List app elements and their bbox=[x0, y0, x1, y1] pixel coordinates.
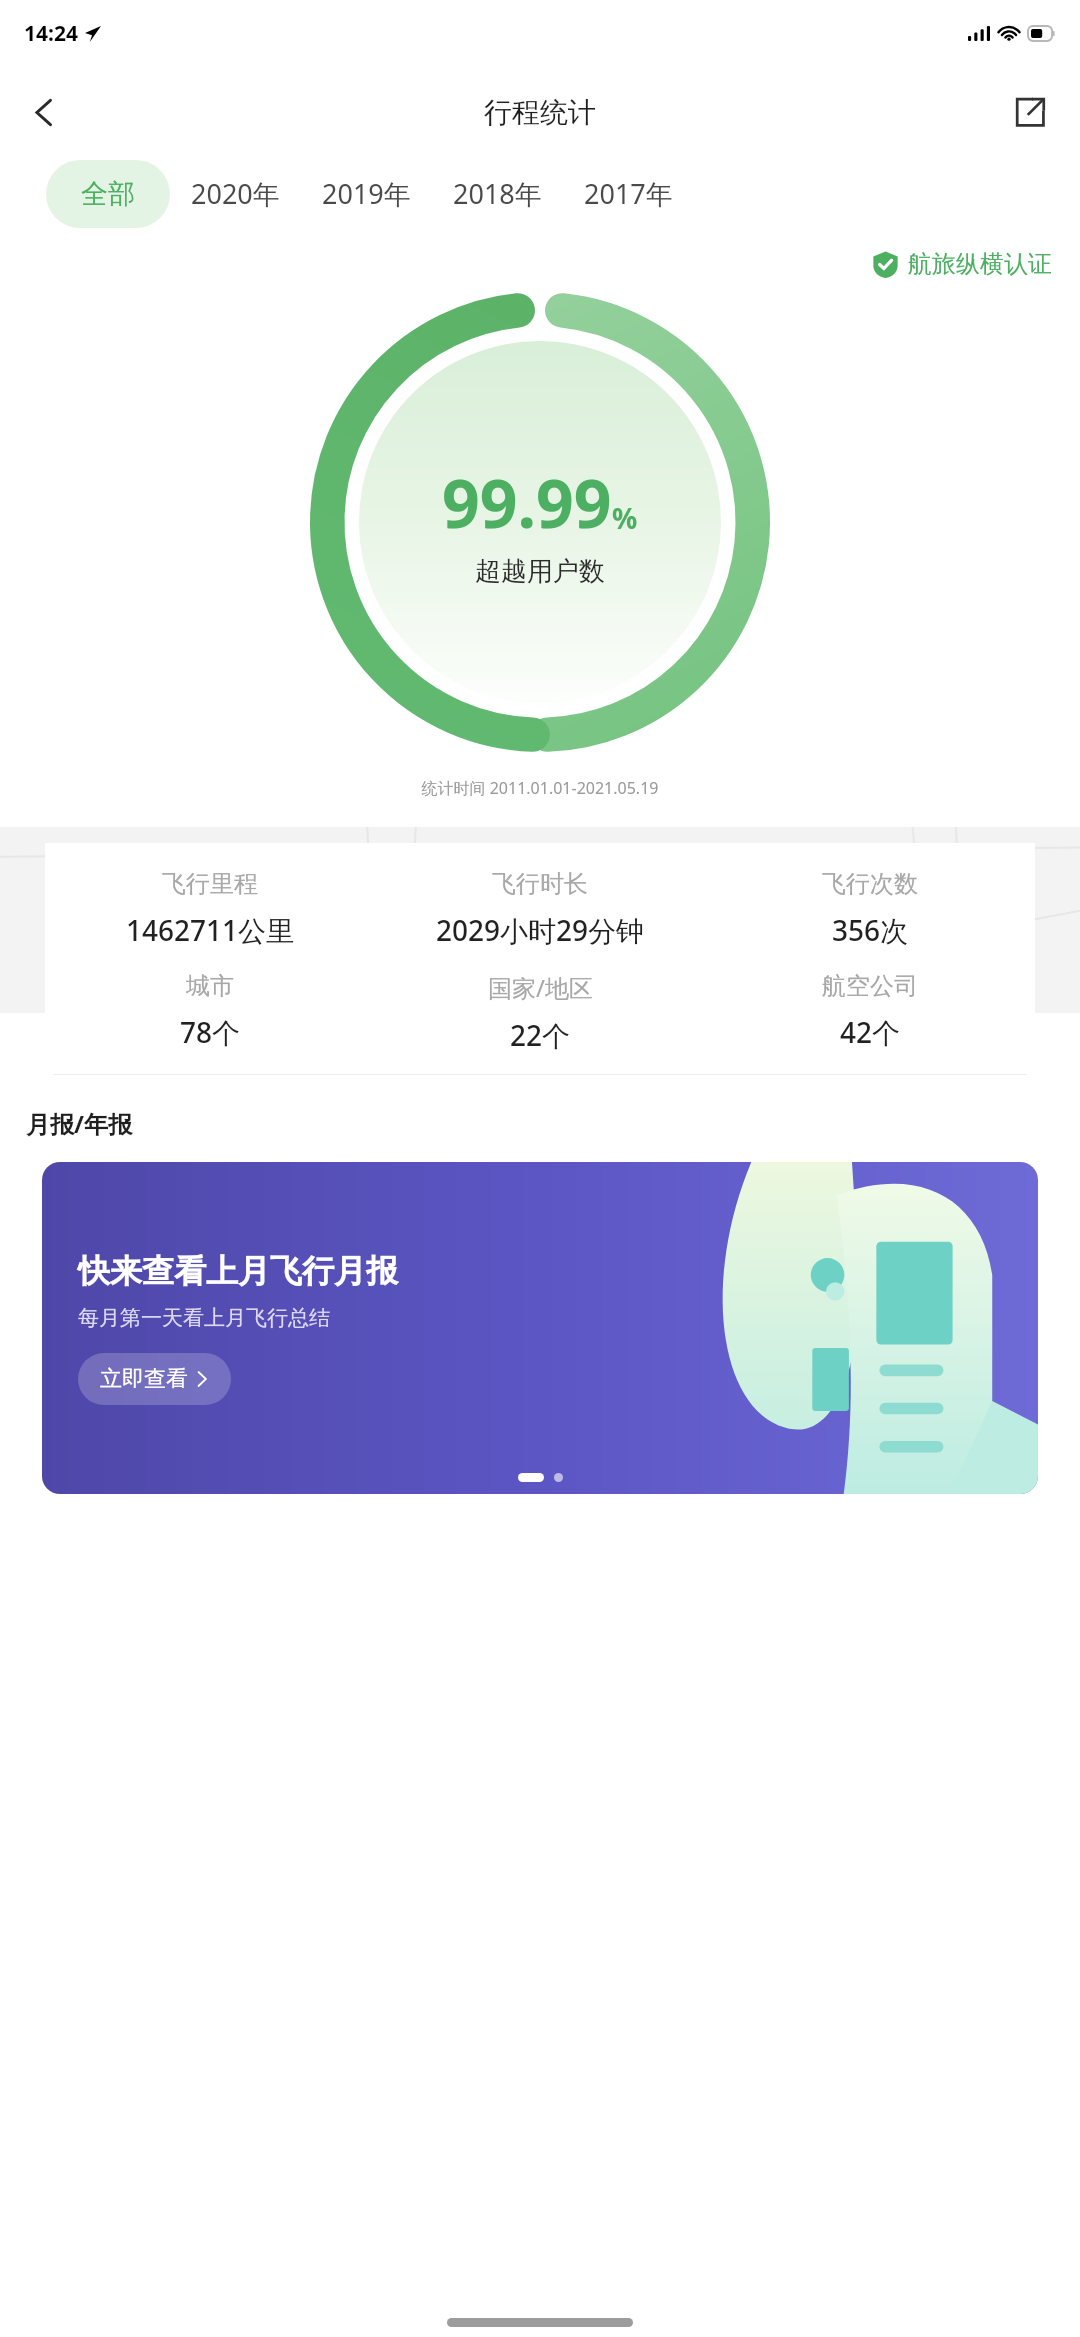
staticText: 78个 bbox=[180, 1013, 241, 1051]
staticText: 356次 bbox=[832, 911, 909, 949]
button[interactable]: Share bbox=[994, 76, 1066, 148]
staticText: 航旅纵横认证 bbox=[908, 249, 1052, 279]
staticText: 每月第一天看上月飞行总结 bbox=[78, 1305, 330, 1331]
button[interactable]: 2017年 bbox=[563, 158, 694, 229]
staticText: 航空公司 bbox=[822, 971, 918, 1001]
staticText: 飞行时长 bbox=[492, 869, 588, 899]
staticText: 月报/年报 bbox=[26, 1107, 132, 1140]
staticText: 超越用户数 bbox=[475, 555, 605, 588]
button[interactable]: 2020年 bbox=[170, 158, 301, 229]
staticText: 2020年 bbox=[191, 175, 280, 212]
staticText: 城市 bbox=[186, 971, 234, 1001]
button[interactable]: 2019年 bbox=[301, 158, 432, 229]
button[interactable]: 2018年 bbox=[432, 158, 563, 229]
staticText: 立即查看 bbox=[100, 1365, 188, 1393]
staticText: 1462711公里 bbox=[126, 911, 295, 949]
staticText: 飞行里程 bbox=[162, 869, 258, 899]
staticText: 22个 bbox=[510, 1016, 571, 1054]
staticText: 快来查看上月飞行月报 bbox=[78, 1251, 398, 1291]
staticText: 14:24 bbox=[24, 19, 78, 48]
staticText: 2019年 bbox=[322, 175, 411, 212]
staticText: 统计时间 2011.01.01-2021.05.19 bbox=[0, 777, 1080, 799]
button[interactable]: 立即查看 bbox=[78, 1353, 231, 1405]
staticText: 飞行次数 bbox=[822, 869, 918, 899]
staticText: 2029小时29分钟 bbox=[436, 911, 645, 949]
staticText: 国家/地区 bbox=[488, 971, 593, 1004]
staticText: 42个 bbox=[840, 1013, 901, 1051]
staticText: 2018年 bbox=[453, 175, 542, 212]
staticText: 全部 bbox=[81, 177, 135, 211]
staticText: 99.99 bbox=[442, 457, 612, 547]
button[interactable]: Back bbox=[8, 76, 80, 148]
staticText: 行程统计 bbox=[484, 95, 596, 130]
button[interactable]: 全部 bbox=[46, 160, 170, 228]
staticText: % bbox=[612, 499, 638, 537]
staticText: 2017年 bbox=[584, 175, 673, 212]
button[interactable]: 快来查看上月飞行月报 bbox=[42, 1162, 1038, 1494]
